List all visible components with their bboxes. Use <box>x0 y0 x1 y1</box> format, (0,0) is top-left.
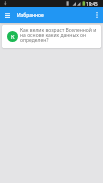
staticText: 19:45 <box>86 1 98 7</box>
button[interactable]: More options <box>91 7 103 23</box>
staticText: Избранное <box>17 12 44 19</box>
staticText: К <box>11 33 15 41</box>
staticText: Как велик возраст Вселенной и на основе … <box>20 27 98 44</box>
button[interactable]: Menu <box>0 7 15 23</box>
button[interactable]: К <box>2 25 101 48</box>
